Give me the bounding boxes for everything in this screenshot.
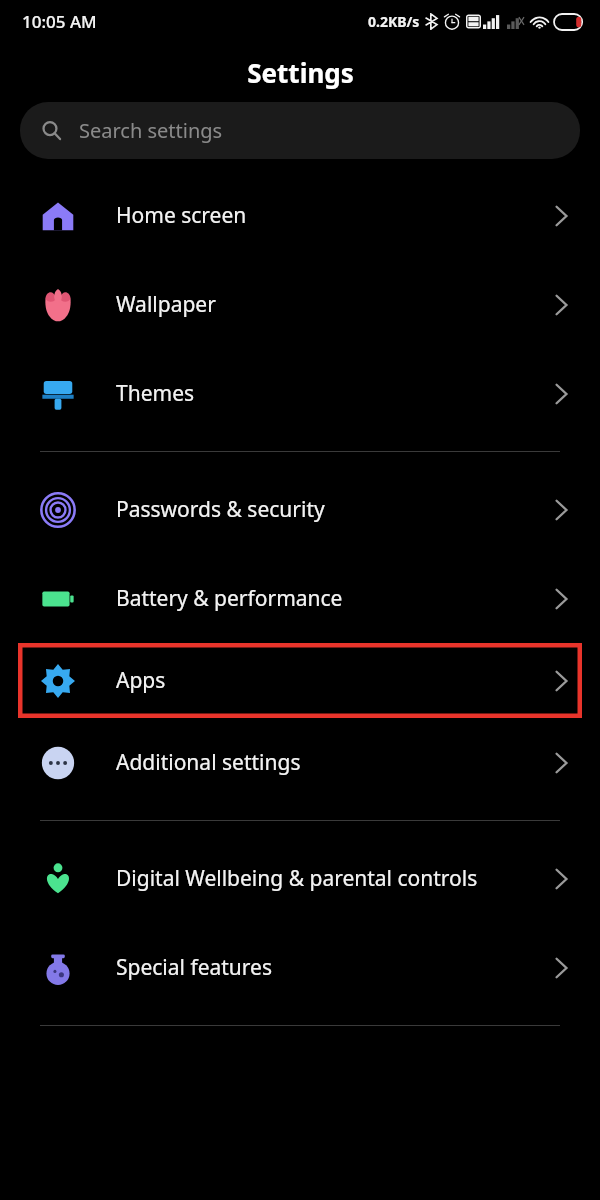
staticText: Home screen [116, 201, 516, 230]
staticText: Wallpaper [116, 290, 516, 319]
staticText: Passwords & security [116, 495, 516, 524]
button[interactable]: Additional settings [0, 718, 600, 807]
staticText: Special features [116, 953, 516, 982]
staticText: Battery & performance [116, 584, 516, 613]
button[interactable]: Themes [0, 349, 600, 438]
button[interactable]: Special features [0, 923, 600, 1012]
button[interactable]: Wallpaper [0, 260, 600, 349]
staticText: Search settings [79, 117, 223, 144]
button[interactable]: Battery & performance [0, 554, 600, 643]
staticText: 10:05 AM [22, 10, 97, 33]
staticText: 0.2KB/s [368, 12, 420, 31]
button[interactable]: Home screen [0, 171, 600, 260]
staticText: Digital Wellbeing & parental controls [116, 864, 516, 893]
button[interactable]: Search settings [20, 102, 580, 159]
button[interactable]: Passwords & security [0, 465, 600, 554]
staticText: Themes [116, 379, 516, 408]
staticText: Settings [247, 55, 354, 90]
button[interactable]: Digital Wellbeing & parental controls [0, 834, 600, 923]
staticText: Additional settings [116, 748, 516, 777]
button[interactable]: Apps [0, 643, 600, 718]
staticText: Apps [116, 666, 516, 695]
